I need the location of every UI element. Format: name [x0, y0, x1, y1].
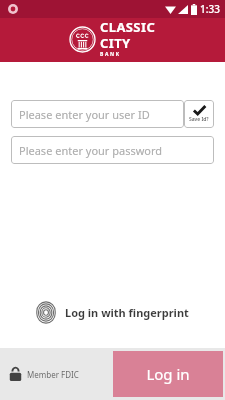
staticText: Please enter your password: [19, 143, 163, 158]
button[interactable]: Save Id: [184, 100, 214, 128]
staticText: 1:33: [200, 2, 220, 16]
button[interactable]: Member FDIC: [0, 362, 85, 386]
staticText: Please enter your user ID: [19, 107, 150, 122]
staticText: CLASSIC: [100, 18, 156, 36]
staticText: Log in: [146, 364, 190, 384]
button[interactable]: Log in with fingerprint: [0, 295, 225, 330]
staticText: CITY: [100, 34, 131, 52]
button[interactable]: Please enter your user ID: [11, 100, 184, 128]
staticText: Log in with fingerprint: [65, 305, 189, 320]
button[interactable]: Log in: [113, 351, 223, 397]
button[interactable]: Please enter your password: [11, 136, 214, 164]
staticText: Save Id?: [189, 116, 209, 123]
staticText: Member FDIC: [27, 369, 79, 380]
staticText: BANK: [100, 51, 121, 58]
